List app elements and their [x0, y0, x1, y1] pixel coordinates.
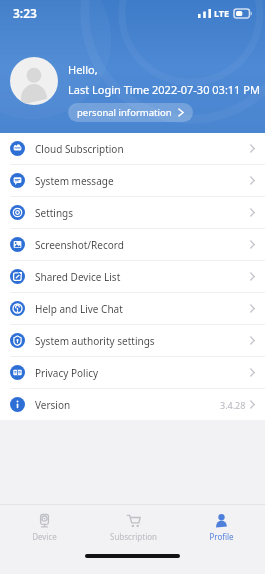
staticText: Help and Live Chat: [35, 302, 123, 316]
button[interactable]: Device: [0, 505, 89, 550]
button[interactable]: Help and Live Chat: [0, 293, 265, 324]
button[interactable]: Version: [0, 389, 265, 420]
staticText: System message: [35, 174, 114, 188]
button[interactable]: Profile: [177, 505, 265, 550]
button[interactable]: personal information: [68, 103, 193, 122]
staticText: Shared Device List: [35, 270, 121, 284]
staticText: Hello,: [68, 62, 98, 77]
staticText: LTE: [214, 7, 230, 19]
staticText: 3:23: [13, 5, 37, 21]
button[interactable]: Screenshot/Record: [0, 229, 265, 260]
button[interactable]: Subscription: [89, 505, 177, 550]
staticText: Profile: [209, 531, 234, 542]
staticText: Settings: [35, 206, 74, 220]
staticText: Last Login Time 2022-07-30 03:11 PM: [68, 82, 260, 97]
button[interactable]: Settings: [0, 197, 265, 228]
button[interactable]: Cloud Subscription: [0, 133, 265, 164]
staticText: personal information: [77, 106, 172, 119]
staticText: Privacy Policy: [35, 366, 99, 380]
button[interactable]: Profile photo: [10, 57, 58, 105]
staticText: 3.4.28: [220, 399, 246, 411]
staticText: System authority settings: [35, 334, 155, 348]
staticText: Version: [35, 398, 71, 412]
staticText: Subscription: [110, 531, 157, 542]
button[interactable]: System message: [0, 165, 265, 196]
button[interactable]: System authority settings: [0, 325, 265, 356]
staticText: Cloud Subscription: [35, 142, 124, 156]
button[interactable]: Privacy Policy: [0, 357, 265, 388]
staticText: Screenshot/Record: [35, 238, 124, 252]
button[interactable]: Shared Device List: [0, 261, 265, 292]
staticText: Device: [32, 531, 57, 542]
